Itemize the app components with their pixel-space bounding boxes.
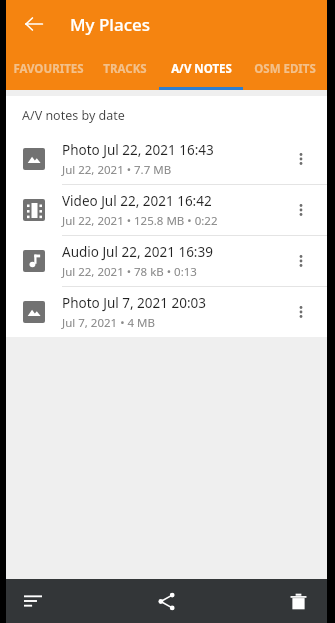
button[interactable]: More options	[281, 241, 321, 281]
button[interactable]: More options	[281, 139, 321, 179]
button[interactable]: More options	[281, 190, 321, 230]
staticText: Photo Jul 7, 2021 20:03	[62, 294, 207, 312]
staticText: My Places	[70, 13, 151, 36]
button[interactable]: FAVOURITES	[6, 48, 90, 90]
button[interactable]: OSM EDITS	[243, 48, 327, 90]
staticText: A/V NOTES	[171, 61, 232, 77]
staticText: TRACKS	[103, 61, 147, 77]
staticText: OSM EDITS	[254, 61, 316, 77]
button[interactable]: Photo Jul 7, 2021 20:03	[6, 287, 327, 337]
staticText: A/V notes by date	[22, 107, 125, 124]
button[interactable]: More options	[281, 292, 321, 332]
button[interactable]: Back	[14, 4, 54, 44]
staticText: Jul 22, 2021 • 78 kB • 0:13	[62, 264, 197, 280]
button[interactable]: Delete	[220, 579, 327, 623]
staticText: Photo Jul 22, 2021 16:43	[62, 141, 214, 159]
button[interactable]: TRACKS	[90, 48, 159, 90]
staticText: Audio Jul 22, 2021 16:39	[62, 243, 213, 261]
button[interactable]: Photo Jul 22, 2021 16:43	[6, 134, 327, 184]
staticText: Jul 7, 2021 • 4 MB	[62, 315, 155, 331]
button[interactable]: Sort	[6, 579, 113, 623]
button[interactable]: A/V NOTES	[159, 48, 243, 90]
button[interactable]: Video Jul 22, 2021 16:42	[6, 185, 327, 235]
staticText: Jul 22, 2021 • 7.7 MB	[62, 162, 172, 178]
staticText: Jul 22, 2021 • 125.8 MB • 0:22	[62, 213, 218, 229]
button[interactable]: Share	[113, 579, 220, 623]
button[interactable]: Audio Jul 22, 2021 16:39	[6, 236, 327, 286]
staticText: FAVOURITES	[13, 61, 84, 77]
staticText: Video Jul 22, 2021 16:42	[62, 192, 212, 210]
